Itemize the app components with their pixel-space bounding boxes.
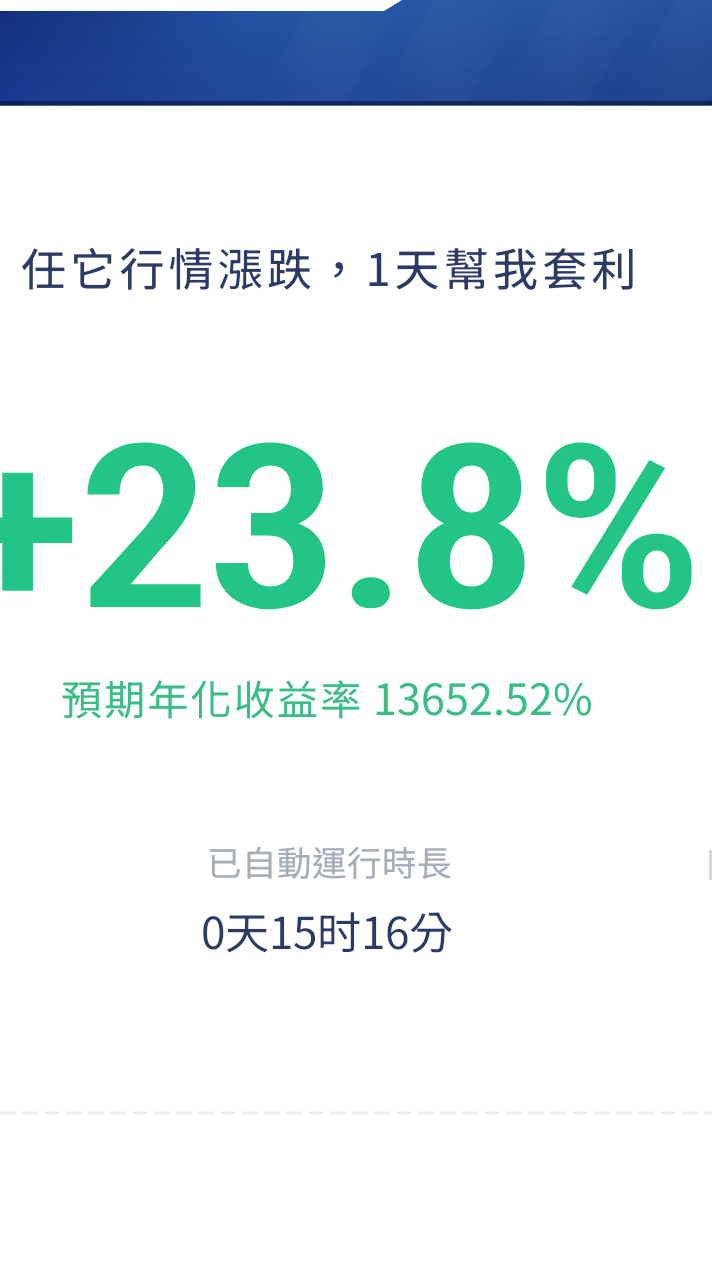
other: Header banner (0, 0, 712, 105)
